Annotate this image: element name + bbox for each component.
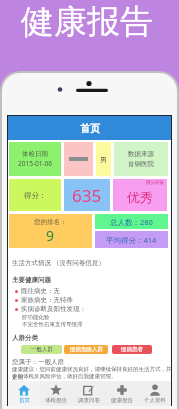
button[interactable]: 一般人群 xyxy=(21,345,62,354)
staticText: 数据来源 首钢医院 xyxy=(128,150,154,168)
button[interactable]: 个人资料 xyxy=(138,381,171,406)
staticText: 635 xyxy=(72,184,102,207)
staticText: 疾病诊断及阳性发现： xyxy=(21,305,86,313)
button[interactable]: 调查问卷 xyxy=(72,381,105,406)
staticText: 主要健康问题 xyxy=(12,276,51,284)
staticText: 首页 xyxy=(80,122,100,135)
button[interactable]: 慢病患者 xyxy=(112,345,152,354)
staticText: 9 xyxy=(46,226,55,245)
staticText: 首页 xyxy=(19,397,30,404)
staticText: 体检报告 xyxy=(45,397,67,404)
staticText: 不完全性右束支传导阻滞 xyxy=(22,321,83,328)
staticText: 调查问卷 xyxy=(78,397,100,404)
button[interactable]: 首页 xyxy=(8,381,40,406)
staticText: 男 xyxy=(100,155,107,164)
staticText: 肝功能化验 xyxy=(22,314,50,321)
staticText: 生活方式情况 （没有问卷信息） xyxy=(12,258,105,267)
staticText: 总人数：280 xyxy=(110,217,153,227)
button[interactable]: 健康报告 xyxy=(105,381,138,406)
staticText: 优秀 xyxy=(127,189,153,205)
staticText: 得分评级 xyxy=(146,180,164,186)
staticText: 健康报告 xyxy=(111,397,133,404)
staticText: 既往病史：无 xyxy=(21,287,60,295)
staticText: 您的排名： xyxy=(34,218,67,226)
staticText: 健康建议：您目前健康状况良好，请继续保持良好的生活方式，并定期 xyxy=(12,366,175,380)
staticText: 您属于：一般人群 xyxy=(12,358,64,366)
staticText: 体检日期 2015-01-06 xyxy=(18,150,52,168)
staticText: 人群分类 xyxy=(12,334,38,342)
button[interactable]: 首页 xyxy=(8,116,171,140)
staticText: 参加体检及风险评估，做好自我健康管理。 xyxy=(12,373,117,380)
button[interactable]: 慢病危险人群 xyxy=(64,345,108,354)
staticText: 家族病史：无特殊 xyxy=(21,296,73,304)
staticText: 一般人群 xyxy=(31,346,53,353)
staticText: 得分： xyxy=(24,191,47,200)
button[interactable]: 体检报告 xyxy=(40,381,72,406)
staticText: 个人资料 xyxy=(144,397,166,404)
staticText: 慢病患者 xyxy=(121,346,143,353)
staticText: 平均得分：414 xyxy=(106,235,157,245)
staticText: 健康报告 xyxy=(21,1,153,43)
staticText: 慢病危险人群 xyxy=(70,346,103,353)
